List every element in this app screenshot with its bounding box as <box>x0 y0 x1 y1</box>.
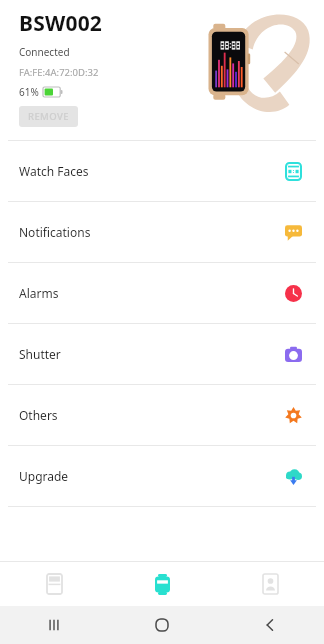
button[interactable]: Upgrade <box>0 446 324 506</box>
staticText: Alarms <box>19 285 284 301</box>
staticText: 61% <box>19 85 39 99</box>
staticText: Connected <box>19 45 70 59</box>
button[interactable]: Devices <box>0 562 108 606</box>
button[interactable]: Others <box>0 385 324 445</box>
staticText: REMOVE <box>28 110 69 123</box>
staticText: Notifications <box>19 224 284 240</box>
button[interactable]: Profile <box>216 562 324 606</box>
button[interactable]: Notifications <box>0 202 324 262</box>
button[interactable]: Alarms <box>0 263 324 323</box>
button[interactable]: Back <box>216 606 324 644</box>
staticText: Watch Faces <box>19 163 284 179</box>
button[interactable]: REMOVE <box>19 106 78 127</box>
staticText: Shutter <box>19 346 284 362</box>
button[interactable]: Recent apps <box>0 606 108 644</box>
button[interactable]: Shutter <box>0 324 324 384</box>
button[interactable]: Watch Faces <box>0 141 324 201</box>
staticText: FA:FE:4A:72:0D:32 <box>19 66 99 79</box>
staticText: Others <box>19 407 284 423</box>
staticText: Upgrade <box>19 468 284 484</box>
staticText: BSW002 <box>19 9 103 38</box>
button[interactable]: Watch <box>108 562 216 606</box>
button[interactable]: Home <box>108 606 216 644</box>
